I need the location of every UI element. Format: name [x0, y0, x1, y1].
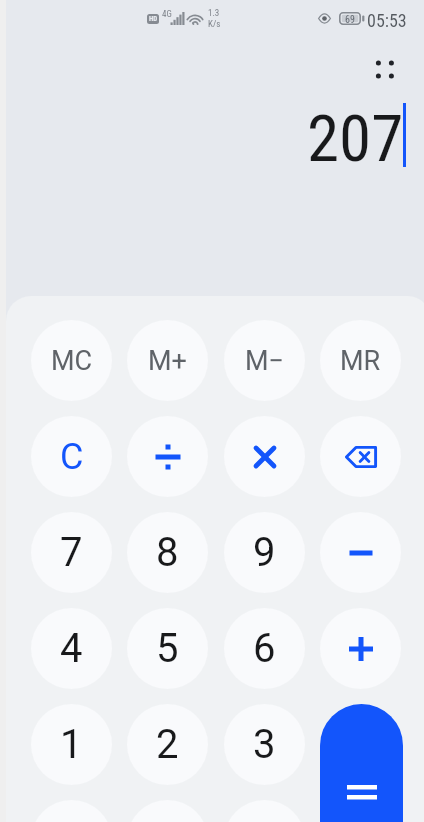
button[interactable]: Multiply: [224, 416, 305, 497]
button[interactable]: .: [127, 800, 208, 822]
button[interactable]: 7: [31, 512, 112, 593]
button[interactable]: Equals: [320, 704, 403, 822]
button[interactable]: 0: [31, 800, 112, 822]
button[interactable]: 3: [224, 704, 305, 785]
button[interactable]: Backspace: [320, 416, 401, 497]
button[interactable]: Minus: [320, 512, 401, 593]
staticText: C: [60, 436, 84, 478]
button[interactable]: 4: [31, 608, 112, 689]
staticText: M−: [245, 345, 285, 377]
button[interactable]: M+: [127, 320, 208, 401]
staticText: 4G: [162, 9, 172, 20]
staticText: 1.3: [208, 8, 220, 19]
button[interactable]: MC: [31, 320, 112, 401]
staticText: 9: [253, 529, 276, 576]
staticText: 207: [307, 101, 404, 177]
staticText: 1: [60, 721, 83, 768]
staticText: 8: [156, 529, 179, 576]
button[interactable]: C: [31, 416, 112, 497]
staticText: M+: [148, 345, 187, 377]
button[interactable]: MR: [320, 320, 401, 401]
button[interactable]: 1: [31, 704, 112, 785]
button[interactable]: Divide: [127, 416, 208, 497]
staticText: MR: [340, 345, 381, 377]
button[interactable]: 2: [127, 704, 208, 785]
staticText: 7: [60, 529, 83, 576]
staticText: 69: [345, 14, 355, 26]
staticText: 4: [60, 625, 83, 672]
staticText: 6: [253, 625, 276, 672]
button[interactable]: M−: [224, 320, 305, 401]
button[interactable]: More options: [363, 48, 407, 92]
button[interactable]: 5: [127, 608, 208, 689]
button[interactable]: Plus: [320, 608, 401, 689]
button[interactable]: 8: [127, 512, 208, 593]
staticText: 05:53: [367, 10, 407, 31]
button[interactable]: 6: [224, 608, 305, 689]
button[interactable]: 9: [224, 512, 305, 593]
staticText: K/s: [208, 19, 221, 30]
staticText: 2: [156, 721, 179, 768]
staticText: HD: [149, 15, 158, 23]
button[interactable]: %: [224, 800, 305, 822]
staticText: MC: [51, 345, 93, 377]
staticText: 3: [253, 721, 276, 768]
staticText: 5: [156, 625, 179, 672]
